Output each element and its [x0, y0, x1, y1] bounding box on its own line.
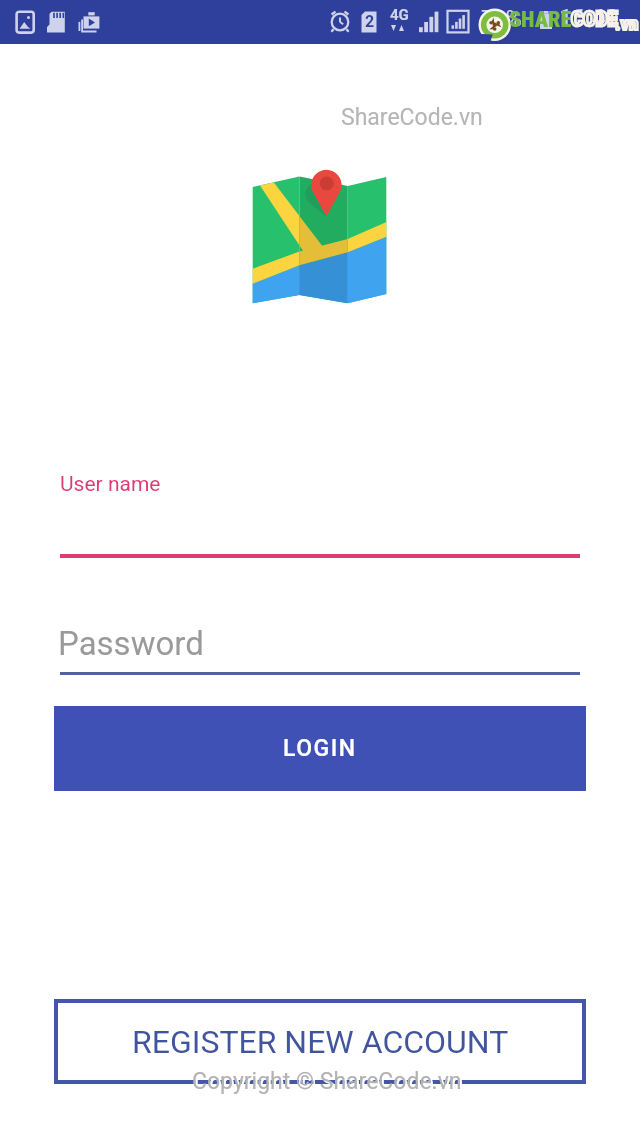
- staticText: 16:40: [559, 4, 619, 32]
- staticText: User name: [60, 472, 161, 497]
- staticText: Copyright © ShareCode.vn: [192, 1068, 462, 1095]
- button[interactable]: REGISTER NEW ACCOUNT: [54, 999, 586, 1084]
- staticText: Password: [58, 624, 204, 663]
- staticText: 78%: [481, 6, 522, 32]
- button[interactable]: LOGIN: [54, 706, 586, 791]
- staticText: .vn: [615, 12, 639, 34]
- staticText: Copyright © ShareCode.vn: [194, 1070, 464, 1097]
- staticText: LOGIN: [283, 735, 357, 762]
- staticText: SHARE: [509, 7, 572, 33]
- staticText: ShareCode.vn: [341, 104, 483, 131]
- staticText: ShareCode.vn: [343, 106, 485, 133]
- staticText: CODE: [571, 7, 618, 32]
- staticText: REGISTER NEW ACCOUNT: [132, 1023, 509, 1061]
- staticText: 2: [365, 12, 375, 31]
- staticText: 4G: [390, 6, 409, 24]
